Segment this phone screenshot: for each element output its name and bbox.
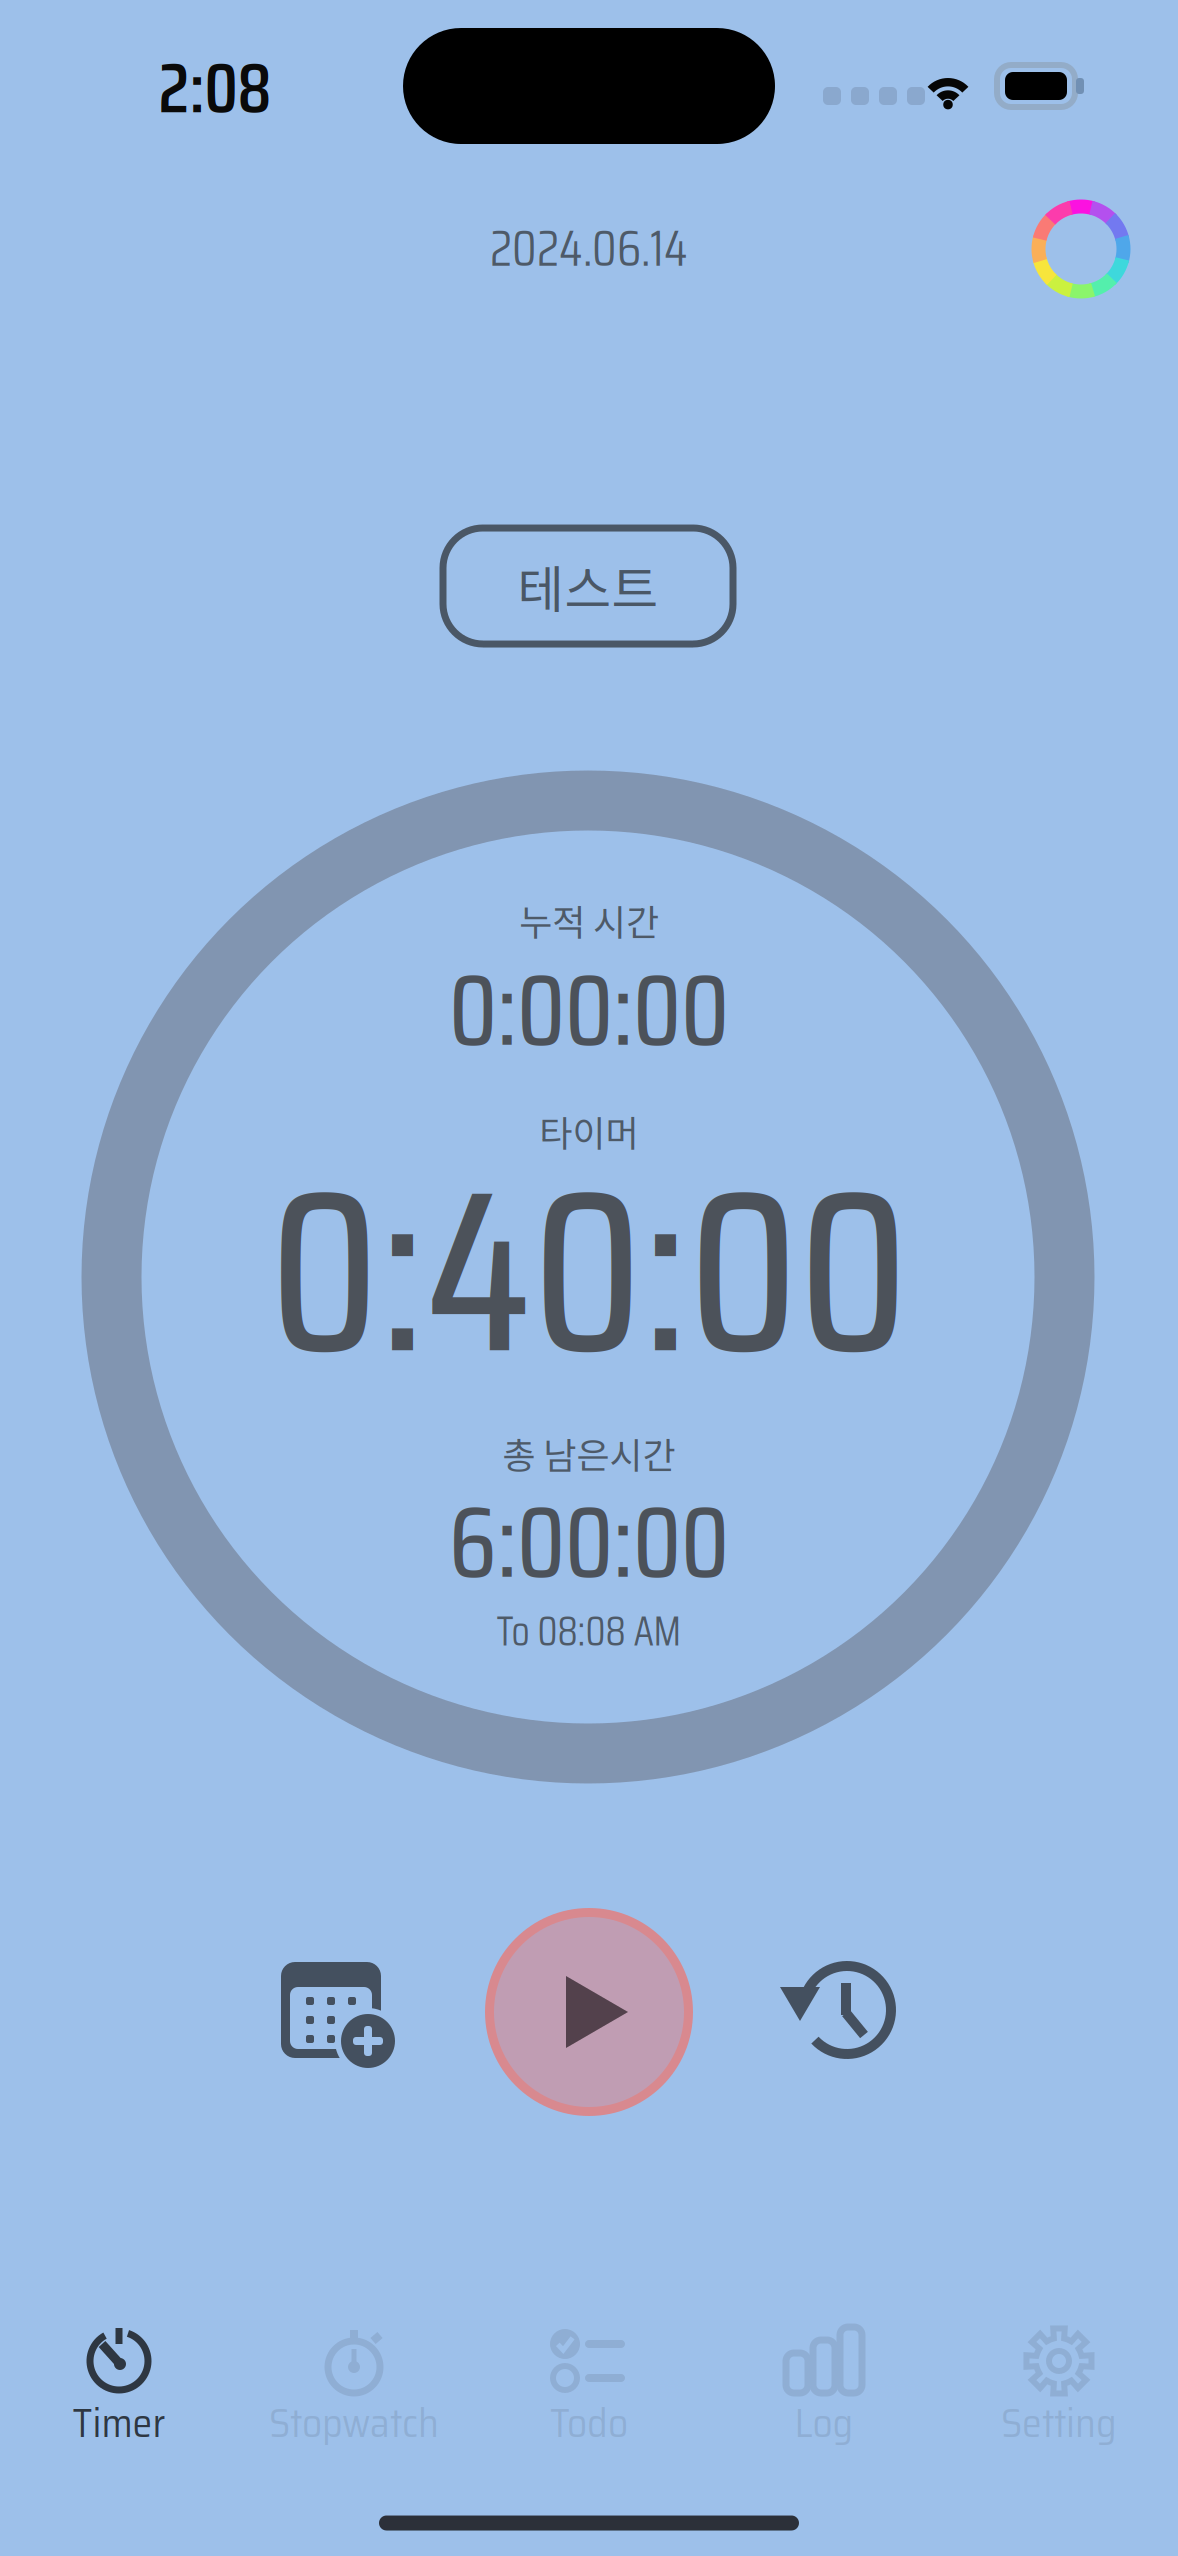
button[interactable]: Timer bbox=[1, 2319, 236, 2451]
staticText: 0:00:00 bbox=[449, 931, 729, 1089]
staticText: 누적 시간 bbox=[519, 894, 659, 946]
staticText: 2024.06.14 bbox=[490, 208, 688, 288]
staticText: 테스트 bbox=[517, 549, 658, 623]
staticText: 2:08 bbox=[158, 33, 271, 142]
button[interactable]: Add schedule bbox=[262, 1935, 412, 2085]
button[interactable]: Todo bbox=[471, 2319, 706, 2451]
staticText: Timer bbox=[72, 2391, 165, 2454]
button[interactable]: History bbox=[766, 1937, 916, 2087]
button[interactable]: Theme color bbox=[1015, 183, 1147, 315]
button[interactable]: Log bbox=[706, 2319, 941, 2451]
staticText: 총 남은시간 bbox=[502, 1427, 675, 1479]
button[interactable]: Start timer bbox=[485, 1908, 693, 2116]
button[interactable]: 테스트 bbox=[443, 528, 733, 644]
staticText: Log bbox=[794, 2391, 853, 2454]
button[interactable]: Stopwatch bbox=[236, 2319, 471, 2451]
button[interactable]: Setting bbox=[941, 2319, 1176, 2451]
staticText: 타이머 bbox=[539, 1105, 638, 1157]
staticText: Stopwatch bbox=[269, 2391, 439, 2454]
staticText: 0:40:00 bbox=[269, 1092, 908, 1450]
staticText: Todo bbox=[550, 2391, 628, 2454]
staticText: Setting bbox=[1001, 2391, 1117, 2454]
staticText: To 08:08 AM bbox=[496, 1598, 681, 1664]
staticText: 6:00:00 bbox=[449, 1463, 729, 1621]
